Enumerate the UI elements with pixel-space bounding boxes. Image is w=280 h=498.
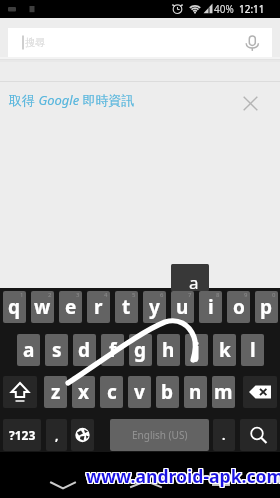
button[interactable]: Search	[240, 419, 277, 451]
button[interactable]: Home	[127, 463, 165, 498]
button[interactable]: Change language	[71, 419, 94, 451]
button[interactable]: n	[184, 376, 207, 408]
button[interactable]: q	[3, 291, 26, 323]
staticText: www.android-apk.com	[87, 465, 280, 489]
staticText: s	[52, 337, 62, 363]
staticText: w	[34, 294, 51, 320]
staticText: 取得 Google 即時資訊	[9, 91, 135, 109]
staticText: p	[260, 294, 273, 320]
staticText: f	[109, 337, 117, 363]
button[interactable]: u	[171, 291, 194, 323]
button[interactable]: p	[255, 291, 278, 323]
staticText: 1	[20, 291, 24, 299]
staticText: d	[78, 337, 91, 363]
staticText: 7	[188, 291, 192, 299]
button[interactable]: Dismiss	[221, 81, 280, 119]
staticText: t	[122, 294, 131, 320]
staticText: 0	[272, 291, 276, 299]
staticText: ?123	[9, 427, 36, 443]
staticText: y	[149, 294, 160, 320]
button[interactable]: k	[213, 334, 236, 366]
button[interactable]: z	[44, 376, 67, 408]
button[interactable]: y	[143, 291, 166, 323]
staticText: ,	[55, 427, 59, 443]
button[interactable]: b	[156, 376, 179, 408]
staticText: z	[51, 379, 61, 405]
button[interactable]: a	[17, 334, 40, 366]
button[interactable]: Shift	[3, 376, 37, 408]
staticText: 5	[132, 291, 136, 299]
button[interactable]: w	[31, 291, 54, 323]
staticText: j	[194, 337, 200, 363]
button[interactable]: 搜尋	[8, 28, 272, 57]
button[interactable]: v	[128, 376, 151, 408]
staticText: h	[162, 337, 175, 363]
button[interactable]: 取得 Google 即時資訊	[0, 81, 280, 119]
button[interactable]: j	[185, 334, 208, 366]
staticText: 40%	[214, 2, 234, 16]
button[interactable]: d	[73, 334, 96, 366]
button[interactable]: h	[157, 334, 180, 366]
staticText: o	[233, 294, 245, 320]
staticText: n	[189, 379, 202, 405]
button[interactable]: f	[101, 334, 124, 366]
staticText: k	[219, 337, 231, 363]
button[interactable]: e	[59, 291, 82, 323]
button[interactable]: Hide keyboard	[44, 463, 82, 498]
staticText: 2	[48, 291, 52, 299]
staticText: a	[189, 271, 199, 291]
staticText: 6	[160, 291, 164, 299]
button[interactable]: g	[129, 334, 152, 366]
staticText: 9	[244, 291, 248, 299]
staticText: g	[134, 337, 147, 363]
button[interactable]: ?123	[3, 419, 41, 451]
staticText: v	[134, 379, 145, 405]
staticText: q	[8, 294, 21, 320]
button[interactable]: i	[199, 291, 222, 323]
staticText: www.android-apk.com	[87, 464, 280, 488]
staticText: a	[23, 337, 35, 363]
staticText: 8	[216, 291, 220, 299]
staticText: r	[94, 294, 103, 320]
button[interactable]: m	[212, 376, 235, 408]
button[interactable]: ,	[46, 419, 67, 451]
staticText: 4	[104, 291, 108, 299]
staticText: e	[65, 294, 77, 320]
button[interactable]: Voice search	[242, 28, 272, 57]
staticText: l	[250, 337, 256, 363]
button[interactable]: .	[213, 419, 235, 451]
staticText: .	[222, 427, 226, 443]
staticText: www.android-apk.com	[85, 464, 280, 488]
staticText: 12:11	[239, 2, 265, 16]
staticText: www.android-apk.com	[85, 465, 280, 489]
staticText: 搜尋	[25, 36, 45, 49]
button[interactable]: s	[45, 334, 68, 366]
staticText: x	[78, 379, 89, 405]
staticText: c	[107, 379, 117, 405]
staticText: b	[161, 379, 174, 405]
button[interactable]: c	[100, 376, 123, 408]
staticText: m	[214, 379, 233, 405]
button[interactable]: Recents	[202, 463, 240, 498]
button[interactable]: x	[72, 376, 95, 408]
staticText: English (US)	[132, 428, 188, 442]
staticText: u	[176, 294, 189, 320]
staticText: www.android-apk.com	[87, 463, 280, 487]
button[interactable]: t	[115, 291, 138, 323]
button[interactable]: Backspace	[243, 376, 277, 408]
staticText: www.android-apk.com	[86, 465, 280, 489]
button[interactable]: o	[227, 291, 250, 323]
staticText: www.android-apk.com	[86, 464, 280, 488]
staticText: i	[208, 294, 214, 320]
staticText: www.android-apk.com	[86, 463, 280, 487]
staticText: www.android-apk.com	[85, 463, 280, 487]
button[interactable]: r	[87, 291, 110, 323]
button[interactable]: English (US)	[110, 419, 209, 451]
button[interactable]: l	[241, 334, 264, 366]
staticText: 3	[76, 291, 80, 299]
